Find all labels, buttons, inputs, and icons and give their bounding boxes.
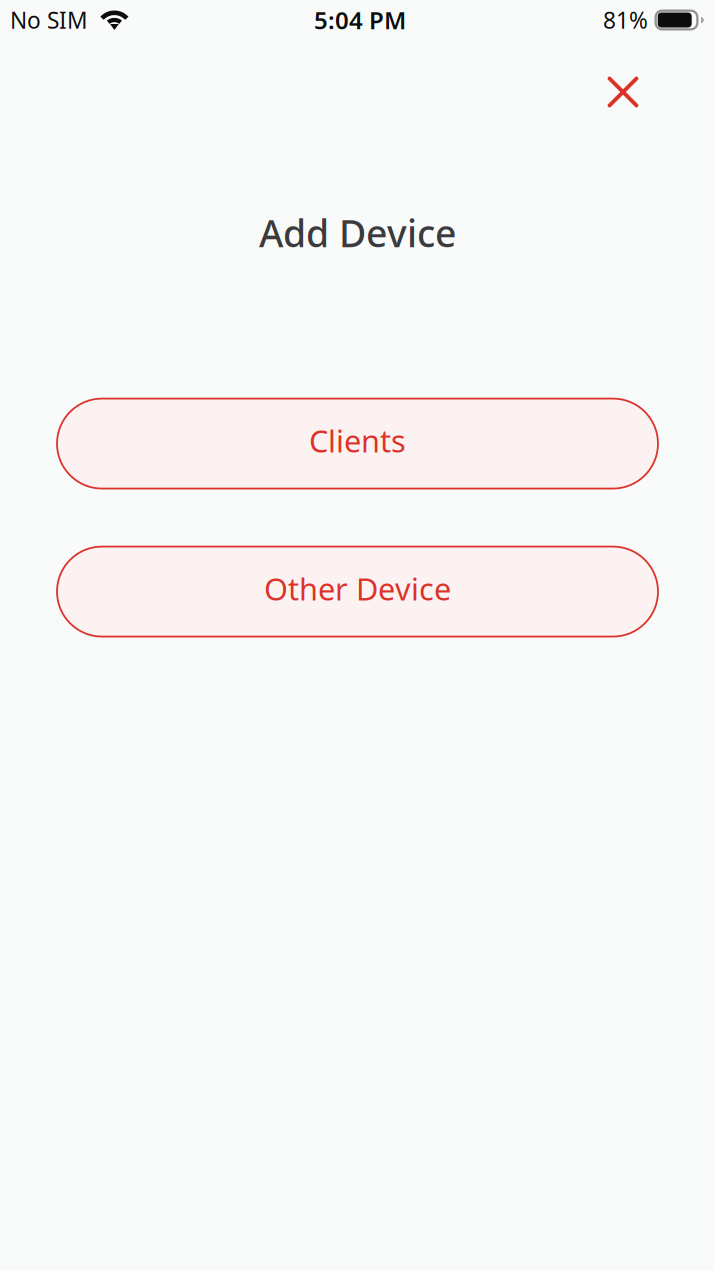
staticText: Clients	[309, 420, 406, 461]
button[interactable]: Close	[586, 55, 660, 129]
staticText: No SIM	[10, 5, 88, 35]
staticText: 81%	[603, 5, 648, 35]
staticText: Add Device	[259, 208, 456, 258]
button[interactable]: Clients	[57, 399, 658, 489]
staticText: 5:04 PM	[314, 4, 406, 36]
button[interactable]: Other Device	[57, 547, 658, 637]
staticText: Other Device	[264, 568, 451, 609]
